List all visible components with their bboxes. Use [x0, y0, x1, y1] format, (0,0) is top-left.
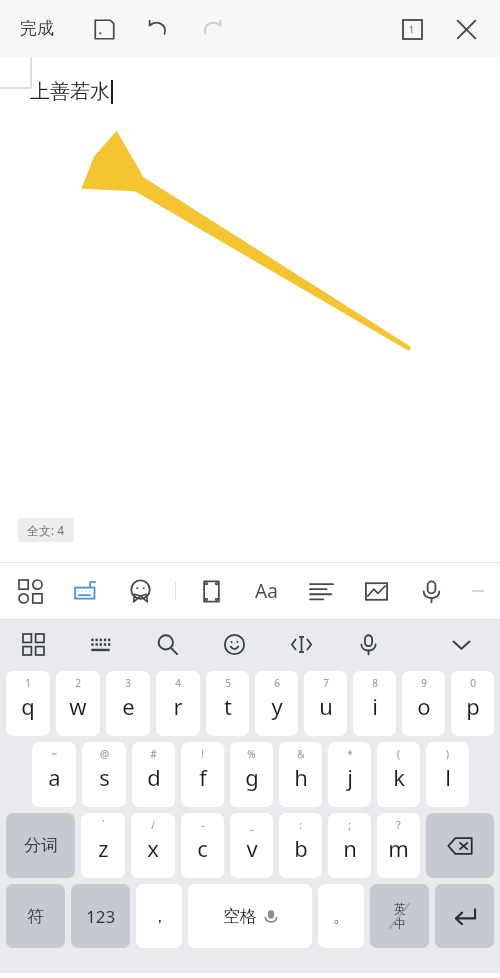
- staticText: ，: [151, 906, 168, 927]
- button[interactable]: 0: [451, 671, 494, 736]
- button[interactable]: Emoji: [215, 625, 253, 663]
- staticText: r: [173, 691, 183, 721]
- button[interactable]: Close: [448, 11, 484, 47]
- button[interactable]: Voice: [411, 571, 451, 611]
- staticText: a: [48, 762, 61, 792]
- staticText: 1: [25, 676, 31, 690]
- button[interactable]: 6: [255, 671, 298, 736]
- button[interactable]: Edit cursor: [282, 625, 320, 663]
- staticText: (: [397, 747, 400, 761]
- button[interactable]: 4: [156, 671, 200, 736]
- staticText: 4: [175, 676, 181, 690]
- button[interactable]: 英: [370, 884, 429, 948]
- staticText: &: [297, 747, 305, 761]
- staticText: @: [100, 747, 109, 761]
- staticText: %: [247, 747, 256, 761]
- button[interactable]: Hide keyboard: [442, 625, 480, 663]
- staticText: n: [343, 833, 357, 863]
- staticText: u: [319, 691, 333, 721]
- staticText: ?: [396, 818, 401, 832]
- staticText: ~: [51, 747, 57, 761]
- staticText: 全文: 4: [27, 522, 65, 538]
- button[interactable]: #: [132, 742, 175, 807]
- button[interactable]: ): [426, 742, 469, 807]
- staticText: -: [201, 818, 205, 832]
- button[interactable]: Save: [86, 11, 122, 47]
- button[interactable]: &: [279, 742, 322, 807]
- staticText: ;: [348, 818, 351, 832]
- button[interactable]: ~: [32, 742, 76, 807]
- button[interactable]: Undo: [140, 11, 176, 47]
- button[interactable]: :: [279, 813, 322, 878]
- button[interactable]: Search: [148, 625, 186, 663]
- staticText: 5: [225, 676, 231, 690]
- staticText: z: [98, 833, 109, 863]
- button[interactable]: (: [377, 742, 420, 807]
- staticText: 123: [86, 905, 116, 928]
- button[interactable]: 8: [353, 671, 396, 736]
- button[interactable]: 5: [206, 671, 249, 736]
- button[interactable]: 1: [6, 671, 50, 736]
- button[interactable]: Emoji: [120, 571, 160, 611]
- button[interactable]: 完成: [16, 12, 58, 45]
- button[interactable]: Components: [10, 571, 50, 611]
- button[interactable]: Apps: [14, 625, 52, 663]
- button[interactable]: %: [230, 742, 273, 807]
- button[interactable]: Backspace: [426, 813, 494, 878]
- button[interactable]: @: [82, 742, 126, 807]
- button[interactable]: Select: [191, 571, 231, 611]
- staticText: 分词: [24, 835, 58, 856]
- button[interactable]: Keyboard layout: [81, 625, 119, 663]
- button[interactable]: -: [181, 813, 224, 878]
- button[interactable]: Align: [301, 571, 341, 611]
- staticText: j: [347, 762, 353, 792]
- staticText: p: [466, 691, 480, 721]
- button[interactable]: 3: [106, 671, 150, 736]
- staticText: *: [347, 747, 353, 761]
- staticText: 2: [75, 676, 81, 690]
- button[interactable]: 空格: [188, 884, 312, 948]
- staticText: 1: [409, 23, 415, 35]
- button[interactable]: Aa: [246, 571, 286, 611]
- button[interactable]: Image: [356, 571, 396, 611]
- staticText: ): [446, 747, 449, 761]
- staticText: v: [246, 833, 258, 863]
- staticText: b: [294, 833, 308, 863]
- staticText: h: [294, 762, 308, 792]
- button[interactable]: ;: [328, 813, 371, 878]
- button[interactable]: Keyboard: [65, 571, 105, 611]
- staticText: t: [224, 691, 232, 721]
- staticText: 符: [27, 906, 44, 927]
- button[interactable]: 9: [402, 671, 445, 736]
- staticText: /: [151, 818, 155, 832]
- button[interactable]: 2: [56, 671, 100, 736]
- staticText: 上善若水: [30, 79, 110, 104]
- staticText: 7: [323, 676, 329, 690]
- button[interactable]: More: [466, 579, 490, 603]
- button[interactable]: Voice input: [349, 625, 387, 663]
- button[interactable]: 123: [71, 884, 130, 948]
- staticText: k: [393, 762, 405, 792]
- button[interactable]: 分词: [6, 813, 75, 878]
- staticText: 3: [125, 676, 131, 690]
- staticText: `: [102, 818, 105, 832]
- staticText: m: [388, 833, 409, 863]
- button[interactable]: Redo: [194, 11, 230, 47]
- button[interactable]: Enter: [435, 884, 494, 948]
- staticText: d: [147, 762, 161, 792]
- button[interactable]: Windows: [394, 11, 430, 47]
- staticText: 完成: [20, 18, 54, 39]
- button[interactable]: 符: [6, 884, 65, 948]
- button[interactable]: _: [230, 813, 273, 878]
- button[interactable]: /: [131, 813, 175, 878]
- button[interactable]: !: [181, 742, 224, 807]
- staticText: y: [271, 691, 283, 721]
- button[interactable]: ，: [136, 884, 182, 948]
- button[interactable]: 。: [318, 884, 364, 948]
- button[interactable]: *: [328, 742, 371, 807]
- button[interactable]: ?: [377, 813, 420, 878]
- button[interactable]: 7: [304, 671, 347, 736]
- staticText: 空格: [223, 906, 257, 927]
- staticText: :: [299, 818, 302, 832]
- button[interactable]: `: [81, 813, 125, 878]
